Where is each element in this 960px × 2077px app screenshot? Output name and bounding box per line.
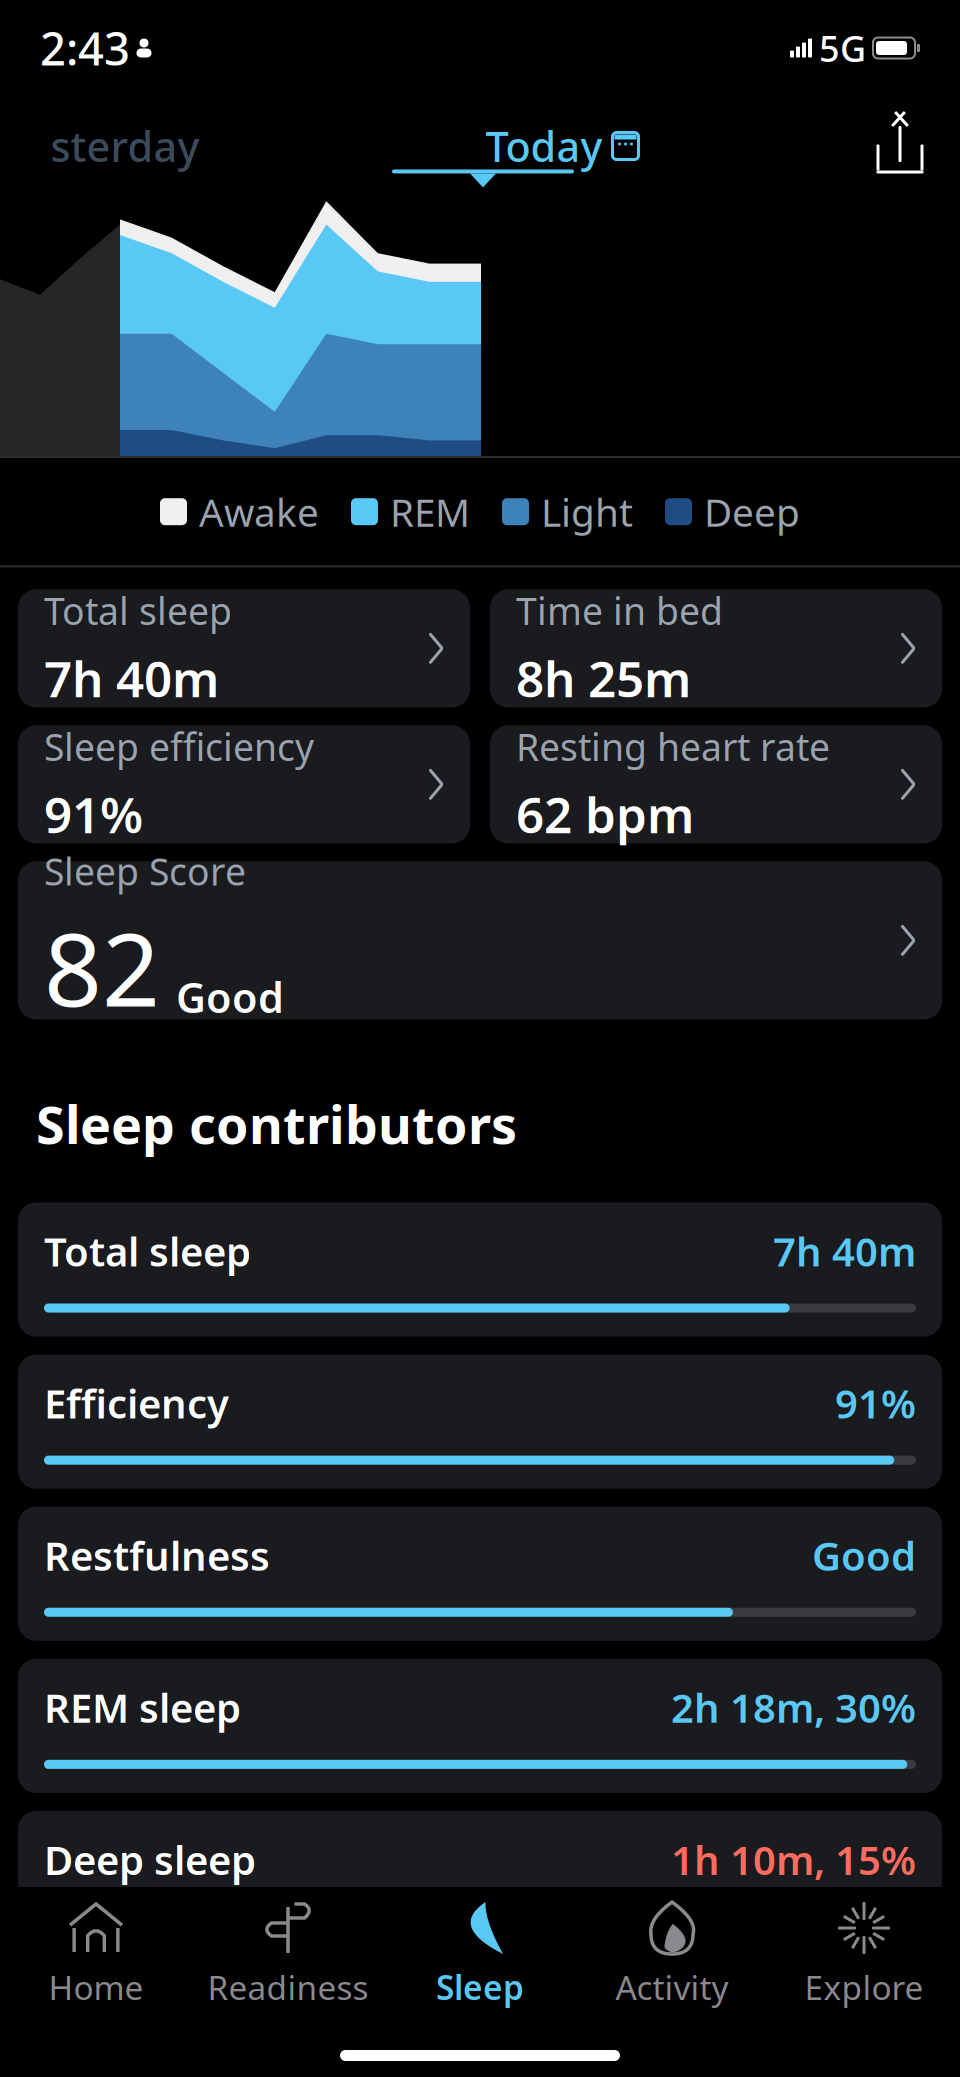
- button[interactable]: Resting heart rate: [490, 725, 942, 843]
- button[interactable]: Share: [874, 116, 960, 176]
- staticText: Deep sleep: [44, 1833, 256, 1886]
- staticText: 4m: [855, 1985, 916, 2038]
- staticText: sterday: [50, 119, 199, 173]
- staticText: Explore: [804, 1965, 923, 2009]
- button[interactable]: Total sleep: [18, 589, 470, 707]
- staticText: Today: [485, 119, 602, 173]
- button[interactable]: Sleep efficiency: [18, 725, 470, 843]
- button[interactable]: sterday: [0, 105, 250, 187]
- staticText: Home: [48, 1965, 143, 2009]
- button[interactable]: Restfulness: [18, 1507, 942, 1641]
- button[interactable]: Efficiency: [18, 1354, 942, 1489]
- staticText: Latency: [44, 1985, 196, 2038]
- staticText: Total sleep: [44, 1224, 251, 1277]
- staticText: 91%: [44, 781, 143, 847]
- button[interactable]: Latency: [18, 1963, 942, 2077]
- staticText: Activity: [615, 1965, 728, 2009]
- staticText: 2:43: [40, 18, 130, 78]
- staticText: Light: [541, 486, 633, 537]
- button[interactable]: Home: [0, 1887, 192, 2017]
- staticText: 8h 25m: [516, 645, 691, 711]
- staticText: 7h 40m: [44, 645, 219, 711]
- staticText: REM sleep: [44, 1681, 241, 1734]
- staticText: 5G: [819, 24, 866, 72]
- staticText: Good: [812, 1529, 916, 1582]
- staticText: Sleep contributors: [36, 1089, 517, 1158]
- button[interactable]: Time in bed: [490, 589, 942, 707]
- button[interactable]: Activity: [576, 1887, 768, 2017]
- staticText: Time in bed: [516, 586, 723, 635]
- button[interactable]: Sleep: [384, 1887, 576, 2017]
- staticText: Deep: [704, 486, 800, 537]
- button[interactable]: Today: [470, 105, 654, 187]
- staticText: 82: [44, 900, 160, 1034]
- staticText: Efficiency: [44, 1376, 229, 1430]
- staticText: Readiness: [207, 1965, 368, 2009]
- staticText: Restfulness: [44, 1529, 270, 1582]
- staticText: Awake: [199, 486, 319, 537]
- staticText: REM: [390, 486, 470, 537]
- button[interactable]: Explore: [768, 1887, 960, 2017]
- staticText: 62 bpm: [516, 781, 694, 847]
- staticText: Sleep Score: [44, 846, 246, 896]
- staticText: 2h 18m, 30%: [671, 1681, 916, 1734]
- staticText: 91%: [835, 1376, 916, 1430]
- staticText: 1h 10m, 15%: [671, 1833, 916, 1886]
- button[interactable]: REM sleep: [18, 1659, 942, 1793]
- button[interactable]: Readiness: [192, 1887, 384, 2017]
- staticText: Sleep efficiency: [44, 722, 314, 771]
- staticText: Good: [176, 969, 284, 1024]
- button[interactable]: Deep sleep: [18, 1811, 942, 1945]
- staticText: Sleep: [436, 1965, 524, 2009]
- staticText: 7h 40m: [773, 1224, 916, 1277]
- button[interactable]: Sleep Score: [18, 861, 942, 1019]
- staticText: Resting heart rate: [516, 722, 830, 771]
- staticText: Total sleep: [44, 586, 232, 635]
- button[interactable]: Total sleep: [18, 1202, 942, 1336]
